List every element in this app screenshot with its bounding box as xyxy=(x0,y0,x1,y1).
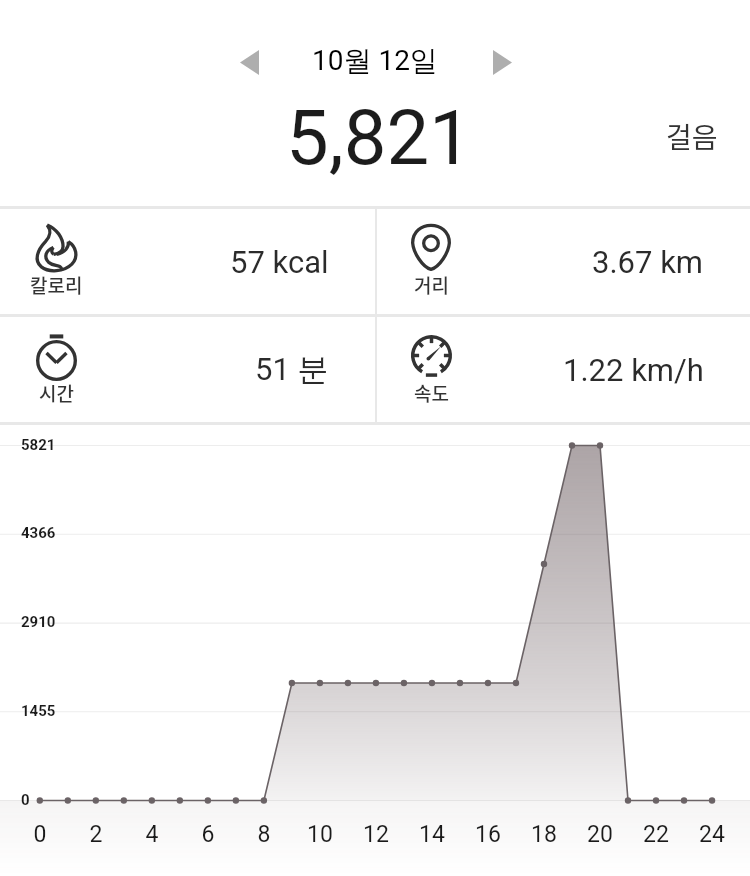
staticText: 4366 xyxy=(21,524,56,542)
staticText: 5821 xyxy=(21,436,56,454)
staticText: 8 xyxy=(244,821,284,848)
staticText: 2910 xyxy=(21,613,56,631)
staticText: 20 xyxy=(580,821,620,848)
staticText: 10 xyxy=(300,821,340,848)
staticText: 6 xyxy=(188,821,228,848)
staticText: 0 xyxy=(21,791,30,809)
staticText: 1.22 km/h xyxy=(563,352,704,388)
button[interactable]: 속도 xyxy=(377,317,750,422)
staticText: 51 분 xyxy=(255,350,329,389)
staticText: 14 xyxy=(412,821,452,848)
staticText: 4 xyxy=(132,821,172,848)
staticText: 0 xyxy=(20,821,60,848)
button[interactable]: 거리 xyxy=(377,209,750,314)
staticText: 57 kcal xyxy=(230,244,329,280)
staticText: 1455 xyxy=(21,702,56,720)
staticText: 칼로리 xyxy=(30,271,83,299)
staticText: 10월 12일 xyxy=(312,43,438,78)
staticText: 5,821 xyxy=(286,93,472,182)
staticText: 22 xyxy=(636,821,676,848)
staticText: 걸음 xyxy=(666,116,718,157)
button[interactable]: Previous day xyxy=(221,34,277,90)
staticText: 18 xyxy=(524,821,564,848)
staticText: 16 xyxy=(468,821,508,848)
button[interactable]: Next day xyxy=(474,34,530,90)
staticText: 시간 xyxy=(39,379,74,407)
button[interactable]: 시간 xyxy=(0,317,375,422)
staticText: 24 xyxy=(692,821,732,848)
staticText: 3.67 km xyxy=(592,244,704,280)
button[interactable]: 칼로리 xyxy=(0,209,375,314)
staticText: 거리 xyxy=(414,271,449,299)
staticText: 12 xyxy=(356,821,396,848)
staticText: 속도 xyxy=(414,379,449,407)
staticText: 2 xyxy=(76,821,116,848)
